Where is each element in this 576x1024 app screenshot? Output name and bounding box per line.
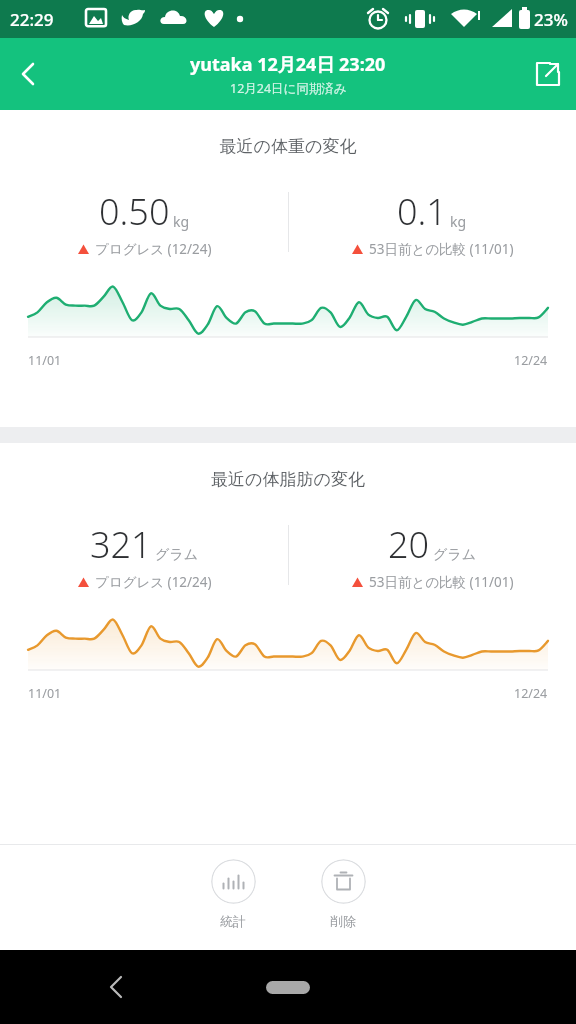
- button[interactable]: 20: [288, 520, 576, 591]
- staticText: kg: [450, 212, 467, 231]
- button[interactable]: Share: [520, 46, 576, 102]
- staticText: 23%: [534, 8, 568, 31]
- staticText: 12/24: [514, 685, 548, 702]
- staticText: kg: [173, 212, 190, 231]
- button[interactable]: Back: [90, 961, 142, 1013]
- button[interactable]: Home: [266, 981, 310, 994]
- staticText: 最近の体重の変化: [0, 136, 576, 157]
- button[interactable]: 0.50: [0, 187, 288, 258]
- staticText: グラム: [155, 546, 198, 564]
- staticText: グラム: [433, 546, 476, 564]
- button[interactable]: Back: [0, 46, 56, 102]
- staticText: 11/01: [28, 352, 62, 369]
- staticText: 統計: [220, 913, 246, 929]
- other: Delete: [321, 859, 366, 904]
- staticText: 20: [388, 520, 430, 569]
- button[interactable]: Delete: [288, 859, 398, 929]
- staticText: 53日前との比較 (11/01): [369, 573, 514, 591]
- staticText: 22:29: [10, 8, 54, 31]
- button[interactable]: 321: [0, 520, 288, 591]
- staticText: 53日前との比較 (11/01): [369, 240, 514, 258]
- staticText: 最近の体脂肪の変化: [0, 469, 576, 490]
- button[interactable]: Statistics: [178, 859, 288, 929]
- staticText: プログレス (12/24): [95, 240, 212, 258]
- staticText: 321: [90, 520, 152, 569]
- button[interactable]: 0.1: [288, 187, 576, 258]
- staticText: 12/24: [514, 352, 548, 369]
- staticText: 12月24日に同期済み: [230, 80, 347, 97]
- staticText: 0.1: [397, 187, 447, 236]
- staticText: 0.50: [99, 187, 170, 236]
- staticText: 削除: [330, 913, 356, 929]
- other: Statistics: [211, 859, 256, 904]
- staticText: プログレス (12/24): [95, 573, 212, 591]
- staticText: yutaka 12月24日 23:20: [190, 52, 386, 77]
- staticText: 11/01: [28, 685, 62, 702]
